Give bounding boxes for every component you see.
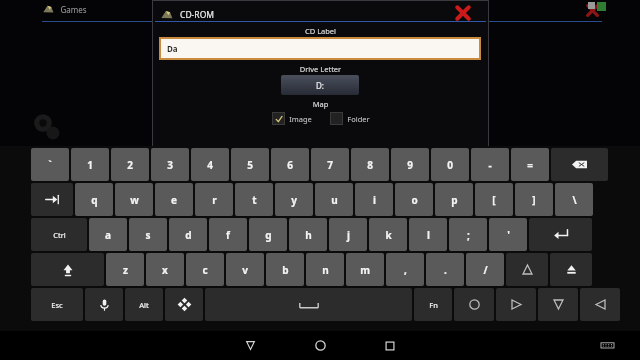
staticText: ; — [467, 228, 470, 242]
button[interactable]: Games — [42, 3, 87, 16]
button[interactable]: Fn — [414, 288, 452, 321]
button[interactable]: h — [289, 218, 327, 251]
button[interactable]: 2 — [111, 148, 149, 181]
staticText: 5 — [247, 158, 253, 172]
button[interactable]: 7 — [311, 148, 349, 181]
button[interactable]: Switch keyboard — [594, 331, 620, 360]
button[interactable]: Enter — [529, 218, 592, 251]
button[interactable]: v — [226, 253, 264, 286]
button[interactable]: Close dialog — [452, 2, 474, 24]
button[interactable]: Shift — [31, 253, 104, 286]
button[interactable]: j — [329, 218, 367, 251]
button[interactable]: k — [369, 218, 407, 251]
button[interactable]: e — [155, 183, 193, 216]
staticText: g — [265, 228, 272, 242]
button[interactable]: Hide keyboard — [215, 331, 285, 360]
staticText: t — [252, 193, 257, 207]
button[interactable]: Esc — [31, 288, 83, 321]
staticText: r — [212, 193, 217, 207]
staticText: o — [411, 193, 418, 207]
button[interactable]: = — [511, 148, 549, 181]
staticText: . — [444, 263, 447, 277]
button[interactable]: ; — [449, 218, 487, 251]
button[interactable]: q — [75, 183, 113, 216]
staticText: Esc — [51, 300, 63, 310]
button[interactable]: 3 — [151, 148, 189, 181]
staticText: ' — [507, 228, 510, 242]
staticText: 3 — [167, 158, 173, 172]
button[interactable]: 6 — [271, 148, 309, 181]
button[interactable]: r — [195, 183, 233, 216]
staticText: D: — [316, 80, 324, 91]
button[interactable]: b — [266, 253, 304, 286]
button[interactable]: l — [409, 218, 447, 251]
button[interactable]: y — [275, 183, 313, 216]
staticText: 2 — [127, 158, 133, 172]
button[interactable]: - — [471, 148, 509, 181]
button[interactable]: Space — [205, 288, 412, 321]
staticText: ] — [532, 193, 536, 207]
button[interactable]: Up — [506, 253, 548, 286]
button[interactable]: 4 — [191, 148, 229, 181]
staticText: n — [322, 263, 329, 277]
button[interactable]: ` — [31, 148, 69, 181]
button[interactable]: a — [89, 218, 127, 251]
button[interactable]: c — [186, 253, 224, 286]
button[interactable]: 5 — [231, 148, 269, 181]
button[interactable]: Alt — [125, 288, 163, 321]
button[interactable]: Microphone — [85, 288, 123, 321]
button[interactable]: Recent apps — [355, 331, 425, 360]
button[interactable]: / — [466, 253, 504, 286]
button[interactable]: [ — [475, 183, 513, 216]
button[interactable]: Symbols — [165, 288, 203, 321]
button[interactable]: 8 — [351, 148, 389, 181]
button[interactable]: f — [209, 218, 247, 251]
button[interactable]: Eject — [550, 253, 592, 286]
button[interactable]: , — [386, 253, 424, 286]
button[interactable]: Backspace — [551, 148, 608, 181]
button[interactable]: t — [235, 183, 273, 216]
button[interactable]: 9 — [391, 148, 429, 181]
button[interactable]: . — [426, 253, 464, 286]
button[interactable]: i — [355, 183, 393, 216]
button[interactable]: D: — [281, 75, 359, 95]
button[interactable]: Down — [538, 288, 578, 321]
button[interactable]: p — [435, 183, 473, 216]
button[interactable]: m — [346, 253, 384, 286]
button[interactable]: Tab — [31, 183, 73, 216]
staticText: [ — [492, 193, 496, 207]
staticText: l — [427, 228, 430, 242]
button[interactable]: g — [249, 218, 287, 251]
button[interactable]: w — [115, 183, 153, 216]
staticText: \ — [572, 193, 577, 207]
button[interactable]: \ — [555, 183, 593, 216]
button[interactable]: Close window — [583, 1, 601, 19]
staticText: z — [123, 263, 128, 277]
button[interactable]: Image — [272, 112, 312, 125]
button[interactable]: Home — [285, 331, 355, 360]
button[interactable]: ' — [489, 218, 527, 251]
button[interactable]: Left — [496, 288, 536, 321]
button[interactable]: s — [129, 218, 167, 251]
button[interactable]: u — [315, 183, 353, 216]
staticText: 6 — [287, 158, 293, 172]
button[interactable]: z — [106, 253, 144, 286]
button[interactable]: Folder — [330, 112, 370, 125]
staticText: s — [145, 228, 151, 242]
button[interactable]: n — [306, 253, 344, 286]
button[interactable]: Right — [580, 288, 620, 321]
button[interactable]: 1 — [71, 148, 109, 181]
button[interactable]: ] — [515, 183, 553, 216]
staticText: j — [347, 228, 350, 242]
button[interactable]: Da — [161, 39, 479, 58]
button[interactable]: d — [169, 218, 207, 251]
button[interactable]: o — [395, 183, 433, 216]
staticText: 1 — [87, 158, 93, 172]
staticText: c — [202, 263, 208, 277]
staticText: Drive Letter — [152, 64, 489, 74]
button[interactable]: Ctrl — [31, 218, 87, 251]
staticText: e — [171, 193, 177, 207]
button[interactable]: x — [146, 253, 184, 286]
button[interactable]: 0 — [431, 148, 469, 181]
button[interactable]: Home — [454, 288, 494, 321]
